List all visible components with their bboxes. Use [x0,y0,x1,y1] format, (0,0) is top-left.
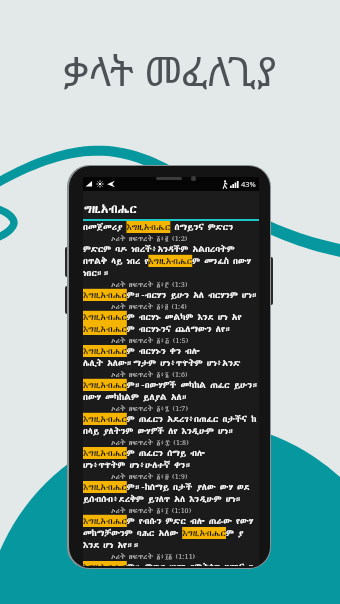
staticText: ኦሪት ዘፍጥረት ፩፥፲ (1:10) [111,505,259,515]
button[interactable]: ሆነ፥ጥዋትም ሆነ፥ሁለተኛ ቀን። [83,459,259,471]
button[interactable]: እግዚአብሔርም ብርሃኑ መልካም እንደ ሆነ አየ [83,311,259,323]
button[interactable]: እግዚአብሔርም ጠፈርን አደረገ፥በጠፈር በታችና ከ [83,413,259,425]
staticText: ኦሪት ዘፍጥረት ፩፥፱ (1:9) [111,471,259,481]
staticText: ቃላት መፈለጊያ [0,43,340,97]
staticText: ኦሪት ዘፍጥረት ፩፥፰ (1:8) [111,437,259,447]
button[interactable]: እንደ ሆነ አየ።። [83,539,259,551]
button[interactable]: እግዚአብሔርም ብርሃኑንና ጨለማውን ለየ። [83,323,259,335]
staticText: ኦሪት ዘፍጥረት ፩፥፲፩ (1:11) [111,551,259,561]
staticText: ግዚአብሔር [84,201,137,218]
button[interactable]: እግዚአብሔርም።-ከሰማይ በታች ያለው ውሃ ወደ አንድ ስ [83,481,259,493]
button[interactable]: በጥልቅ ላይ ነበረ የእግዚአብሔርም መንፈስ በውሃ [83,255,259,267]
button[interactable]: እግዚአብሔርም ጠፈርን ሰማይ ብሎ ጠራው።ማታም [83,447,259,459]
button[interactable]: በውሃ መካከልም ይለያል አለ። [83,391,259,403]
button[interactable]: እግዚአብሔርም የብሱን ምድር ብሎ ጠራው የውሃ [83,515,259,527]
button[interactable]: በመጀመሪያ እግዚአብሔር ሰማይንና ምድርን ፈጠረ። [83,221,259,233]
button[interactable]: ይሰብሰብ፥ደረቅም ይገለጥ አለ እንዲሁም ሆነ። [83,493,259,505]
button[interactable]: እግዚአብሔርም።-በውሃዎች መካከል ጠፈር ይሁን። [83,379,259,391]
staticText: ኦሪት ዘፍጥረት ፩፥፮ (1:6) [111,369,259,379]
button[interactable]: እግዚአብሔርም ብርሃኑን ቀን ብሎ ጠራው፥ጨለማን [83,345,259,357]
button[interactable]: እግዚአብሔርም።-ምድር ሣርን የምትሰጥ ዘርንና ዘ [83,561,259,566]
staticText: ኦሪት ዘፍጥረት ፩፥፬ (1:4) [111,301,259,311]
button[interactable]: እግዚአብሔርም።-ብርሃን ይሁን አለ ብርሃንም ሆነ። [83,289,259,301]
staticText: ኦሪት ዘፍጥረት ፩፥፪ (1:2) [111,233,259,243]
button[interactable]: ነበር።። [83,267,259,279]
button[interactable]: መከማቻውንም ባሕር አለው እግዚአብሔርም ያ ውሃ [83,527,259,539]
staticText: ኦሪት ዘፍጥረት ፩፥፫ (1:3) [111,279,259,289]
button[interactable]: ምድርም ባዶ ነበረች፥አንዳችም አልበረባትም ጨለማ [83,243,259,255]
button[interactable]: ግዚአብሔር [83,191,259,219]
button[interactable]: በላይ ያለትንም ውሃዎች ለየ እንዲሁም ሆነ። [83,425,259,437]
button[interactable]: ሌሊት አለው።ማታም ሆነ፥ጥዋትም ሆነ፥አንድ ቀን። [83,357,259,369]
staticText: ኦሪት ዘፍጥረት ፩፥፯ (1:7) [111,403,259,413]
staticText: 43% [241,179,256,189]
staticText: ኦሪት ዘፍጥረት ፩፥፭ (1:5) [111,335,259,345]
